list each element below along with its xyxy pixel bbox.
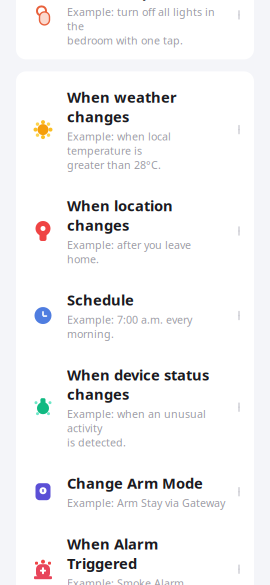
- staticText: Launch Tap-to-Run: [67, 0, 206, 2]
- button[interactable]: When device status changes: [16, 353, 254, 461]
- button[interactable]: Schedule: [16, 278, 254, 353]
- staticText: When location changes: [67, 196, 173, 235]
- staticText: Example: after you leave home.: [67, 238, 191, 266]
- staticText: Example: turn off all lights in the bedr…: [67, 5, 215, 47]
- staticText: Example: when local temperature is great…: [67, 129, 171, 172]
- staticText: Schedule: [67, 290, 134, 310]
- button[interactable]: When weather changes: [16, 75, 254, 184]
- staticText: Change Arm Mode: [67, 473, 203, 493]
- staticText: Example: Smoke Alarm Triggered: [67, 576, 184, 585]
- staticText: When Alarm Triggered: [67, 534, 158, 573]
- staticText: When device status changes: [67, 365, 209, 404]
- button[interactable]: When Alarm Triggered: [16, 522, 254, 585]
- button[interactable]: Launch Tap-to-Run: [16, 0, 254, 59]
- staticText: Example: Arm Stay via Gateway: [67, 496, 225, 510]
- staticText: When weather changes: [67, 87, 177, 126]
- button[interactable]: Change Arm Mode: [16, 461, 254, 522]
- staticText: Example: 7:00 a.m. every morning.: [67, 313, 192, 341]
- staticText: Example: when an unusual activity is det…: [67, 407, 206, 449]
- button[interactable]: When location changes: [16, 184, 254, 278]
